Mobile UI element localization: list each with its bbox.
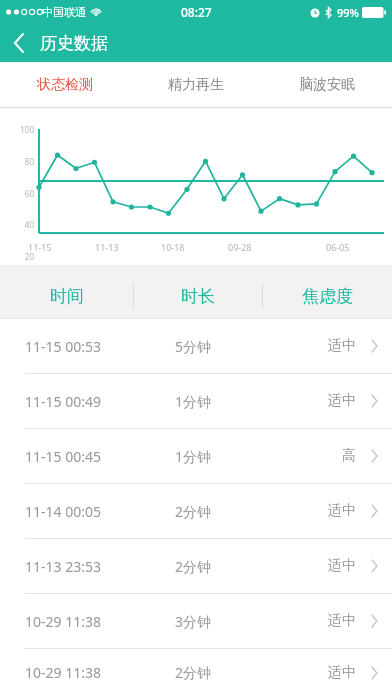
staticText: 100 — [10, 124, 34, 135]
staticText: 3分钟 — [175, 612, 212, 631]
staticText: 历史数据 — [40, 33, 108, 54]
button[interactable]: 10-29 11:38 — [0, 649, 392, 696]
button[interactable]: 11-15 00:49 — [0, 374, 392, 429]
staticText: 10-29 11:38 — [25, 612, 133, 631]
staticText: 时间 — [50, 286, 84, 307]
button[interactable]: 11-14 00:05 — [0, 484, 392, 539]
staticText: 1分钟 — [175, 447, 212, 466]
staticText: 适中 — [328, 502, 356, 520]
staticText: 11-15 00:53 — [25, 337, 133, 356]
staticText: 适中 — [328, 557, 356, 575]
staticText: 11-15 00:49 — [25, 392, 133, 411]
staticText: 脑波安眠 — [299, 76, 355, 94]
staticText: 适中 — [328, 337, 356, 355]
staticText: 10-18 — [161, 241, 185, 253]
staticText: 11-15 00:45 — [25, 447, 133, 466]
button[interactable]: 11-13 23:53 — [0, 539, 392, 594]
staticText: 11-13 — [95, 241, 119, 253]
staticText: 5分钟 — [175, 337, 212, 356]
staticText: 06-05 — [326, 241, 350, 253]
staticText: 适中 — [328, 392, 356, 410]
button[interactable]: 11-15 00:45 — [0, 429, 392, 484]
staticText: 11-15 — [28, 241, 52, 253]
staticText: 2分钟 — [175, 663, 212, 682]
button[interactable]: 11-15 00:53 — [0, 319, 392, 374]
button[interactable]: 脑波安眠 — [261, 62, 392, 107]
staticText: 2分钟 — [175, 502, 212, 521]
staticText: 适中 — [328, 664, 356, 682]
staticText: 精力再生 — [168, 76, 224, 94]
button[interactable]: 状态检测 — [0, 62, 130, 107]
staticText: 高 — [342, 447, 356, 465]
staticText: 80 — [10, 156, 34, 167]
staticText: 11-13 23:53 — [25, 557, 133, 576]
button[interactable]: Back — [0, 24, 38, 62]
staticText: 1分钟 — [175, 392, 212, 411]
staticText: 08:27 — [181, 4, 212, 20]
staticText: 60 — [10, 188, 34, 199]
staticText: 09-28 — [228, 241, 252, 253]
button[interactable]: 精力再生 — [130, 62, 261, 107]
staticText: 20 — [10, 251, 34, 262]
staticText: 焦虑度 — [302, 286, 353, 307]
staticText: 中国联通 — [42, 5, 86, 19]
staticText: 状态检测 — [37, 76, 93, 94]
staticText: 适中 — [328, 612, 356, 630]
staticText: 时长 — [181, 286, 215, 307]
button[interactable]: 10-29 11:38 — [0, 594, 392, 649]
staticText: 11-14 00:05 — [25, 502, 133, 521]
staticText: 2分钟 — [175, 557, 212, 576]
staticText: 10-29 11:38 — [25, 663, 133, 682]
staticText: 40 — [10, 219, 34, 230]
staticText: 99% — [337, 5, 359, 20]
